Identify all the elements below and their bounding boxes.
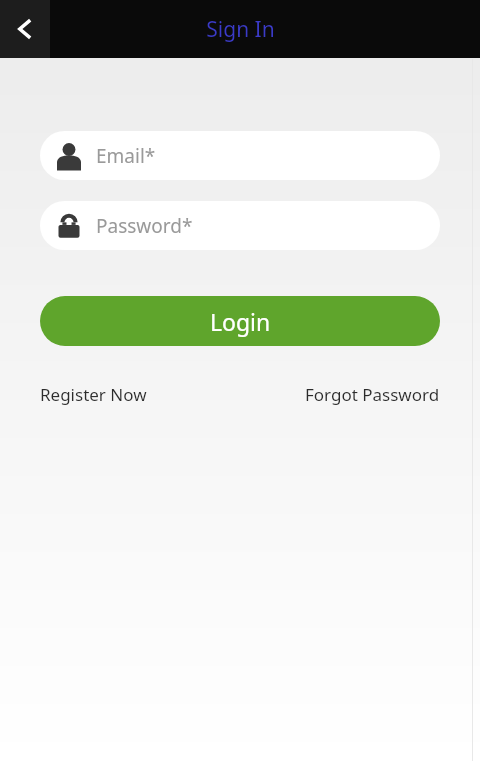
button[interactable]: Back [0, 0, 50, 58]
button[interactable]: Password* [40, 201, 440, 250]
staticText: Register Now [40, 383, 147, 406]
button[interactable]: Register Now [40, 383, 147, 406]
staticText: Password* [96, 213, 193, 239]
button[interactable]: Login [40, 296, 440, 346]
staticText: Forgot Password [305, 383, 440, 406]
staticText: Email* [96, 143, 156, 169]
button[interactable]: Forgot Password [305, 383, 440, 406]
staticText: Sign In [206, 15, 275, 44]
staticText: Login [210, 306, 271, 337]
button[interactable]: Email* [40, 131, 440, 180]
